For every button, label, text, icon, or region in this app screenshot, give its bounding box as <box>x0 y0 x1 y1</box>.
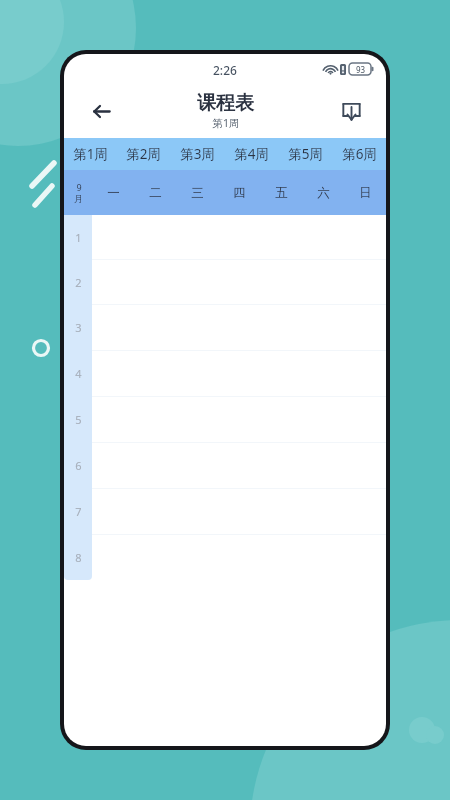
button[interactable]: 第6周 <box>332 138 386 170</box>
button[interactable]: 三 <box>176 170 218 215</box>
button[interactable]: 第2周 <box>117 138 170 170</box>
staticText: 第2周 <box>126 145 161 163</box>
button[interactable]: 第5周 <box>278 138 332 170</box>
staticText: 第1周 <box>73 145 108 163</box>
staticText: 第1周 <box>212 116 240 130</box>
staticText: 6 <box>75 458 82 473</box>
staticText: 第6周 <box>342 145 377 163</box>
staticText: 五 <box>275 185 288 201</box>
staticText: 第3周 <box>180 145 215 163</box>
staticText: 一 <box>107 185 120 201</box>
button[interactable]: 第3周 <box>170 138 224 170</box>
staticText: 日 <box>359 185 372 201</box>
staticText: 课程表 <box>197 91 254 115</box>
staticText: 3 <box>75 320 82 335</box>
button[interactable]: 四 <box>218 170 260 215</box>
staticText: 四 <box>233 185 246 201</box>
button[interactable]: Back <box>84 94 118 128</box>
button[interactable]: 第1周 <box>64 138 117 170</box>
button[interactable]: 日 <box>344 170 386 215</box>
staticText: 93 <box>356 64 366 75</box>
staticText: 2:26 <box>213 62 237 78</box>
staticText: 1 <box>75 230 82 245</box>
button[interactable]: Import schedule <box>334 94 368 128</box>
button[interactable]: 六 <box>302 170 344 215</box>
staticText: 三 <box>191 185 204 201</box>
staticText: 二 <box>149 185 162 201</box>
button[interactable]: 二 <box>134 170 176 215</box>
staticText: 8 <box>75 550 82 565</box>
staticText: 4 <box>75 366 82 381</box>
staticText: 2 <box>75 275 82 290</box>
button[interactable]: 第4周 <box>224 138 278 170</box>
button[interactable]: 五 <box>260 170 302 215</box>
staticText: 9 <box>76 181 82 193</box>
staticText: 月 <box>74 193 83 204</box>
staticText: 第4周 <box>234 145 269 163</box>
staticText: 5 <box>75 412 82 427</box>
button[interactable]: 一 <box>92 170 134 215</box>
staticText: 第5周 <box>288 145 323 163</box>
staticText: 7 <box>75 504 82 519</box>
staticText: 六 <box>317 185 330 201</box>
